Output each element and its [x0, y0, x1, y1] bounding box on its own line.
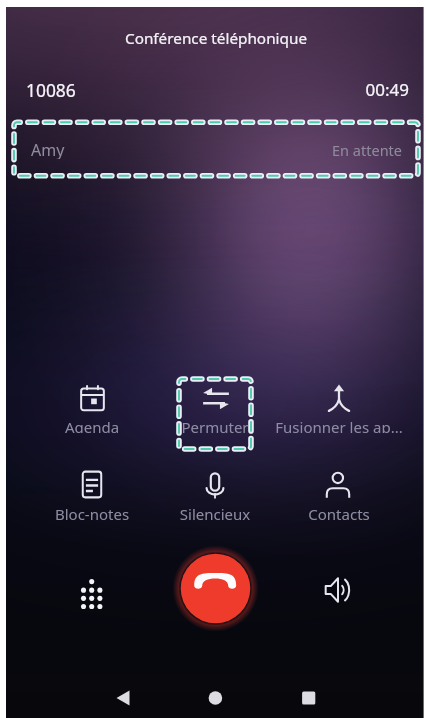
button[interactable]: Back [98, 674, 146, 718]
button[interactable] [14, 122, 418, 175]
staticText: Fusionner les ap... [275, 417, 403, 433]
button[interactable]: Silencieux [179, 466, 251, 536]
staticText: Silencieux [160, 504, 270, 520]
staticText: 00:49 [288, 78, 409, 98]
staticText: Permuter [165, 417, 265, 433]
button[interactable]: Recents [284, 674, 332, 718]
button[interactable]: Agenda [56, 379, 128, 449]
staticText: En attente [240, 140, 402, 160]
staticText: Bloc-notes [37, 504, 147, 520]
button[interactable]: Dialpad [63, 561, 119, 617]
button[interactable]: Speaker [310, 562, 366, 618]
staticText: 10086 [26, 78, 146, 98]
button[interactable]: End call [180, 553, 250, 623]
button[interactable]: Home [191, 674, 239, 718]
staticText: Agenda [42, 417, 142, 433]
staticText: Contacts [284, 504, 394, 520]
staticText: Conférence téléphonique [6, 28, 426, 48]
button[interactable]: Fusionner les ap... [303, 379, 375, 449]
button[interactable]: Bloc-notes [56, 466, 128, 536]
button[interactable]: Permuter [179, 379, 251, 449]
staticText: Amy [31, 139, 191, 159]
button[interactable]: Contacts [303, 466, 375, 536]
